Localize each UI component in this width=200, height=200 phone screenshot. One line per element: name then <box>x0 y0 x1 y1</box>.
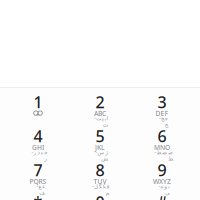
staticText: صضطظ <box>151 149 172 156</box>
staticText: 9 <box>157 159 166 181</box>
staticText: 8 <box>95 159 104 181</box>
staticText: ژسش <box>92 149 107 156</box>
button[interactable]: 0 <box>69 187 131 200</box>
staticText: JKL <box>95 143 105 152</box>
staticText: ابپتث <box>92 115 107 122</box>
staticText: 1 <box>33 91 42 113</box>
button[interactable]: # <box>131 187 193 200</box>
button[interactable]: 5 <box>69 121 131 155</box>
staticText: # <box>157 191 167 200</box>
button[interactable]: 7 <box>7 155 69 189</box>
button[interactable]: 1 <box>7 87 69 121</box>
staticText: PQRS <box>29 177 46 186</box>
staticText: WXYZ <box>153 177 171 186</box>
staticText: عغف <box>31 183 44 190</box>
button[interactable]: 6 <box>131 121 193 155</box>
staticText: 6 <box>157 125 166 147</box>
staticText: 4 <box>33 125 42 147</box>
staticText: 2 <box>95 91 104 113</box>
staticText: GHI <box>32 143 44 152</box>
staticText: نوهی <box>155 183 168 190</box>
staticText: MNO <box>154 143 170 152</box>
button[interactable]: 4 <box>7 121 69 155</box>
staticText: DEF <box>155 109 168 118</box>
staticText: خدذرز <box>29 149 46 156</box>
staticText: 3 <box>157 91 166 113</box>
staticText: 5 <box>95 125 104 147</box>
staticText: 0 <box>95 191 104 200</box>
staticText: * <box>33 191 42 200</box>
staticText: ABC <box>94 109 106 118</box>
button[interactable]: 8 <box>69 155 131 189</box>
staticText: قکگلم <box>90 183 109 190</box>
staticText: 7 <box>33 159 42 181</box>
staticText: TUV <box>93 177 106 186</box>
staticText: جچح <box>156 115 167 122</box>
button[interactable]: 2 <box>69 87 131 121</box>
button[interactable]: 9 <box>131 155 193 189</box>
button[interactable]: * <box>7 187 69 200</box>
button[interactable]: 3 <box>131 87 193 121</box>
